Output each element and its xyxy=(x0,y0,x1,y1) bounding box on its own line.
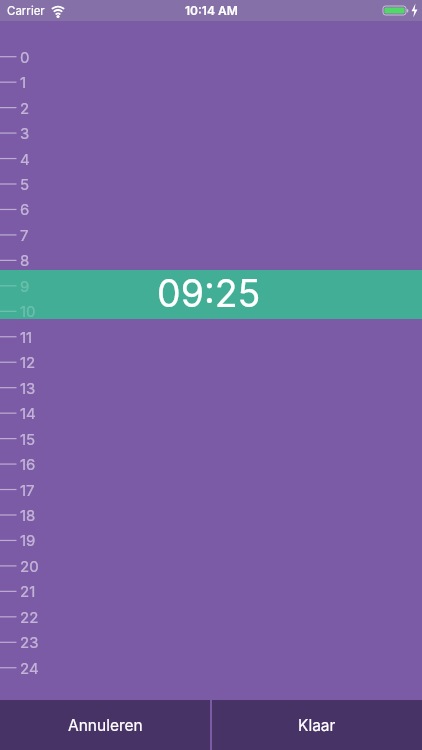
staticText: 2 xyxy=(20,99,30,117)
staticText: 6 xyxy=(20,200,30,218)
staticText: Carrier xyxy=(7,4,45,18)
staticText: 14 xyxy=(20,404,36,422)
staticText: 11 xyxy=(20,328,33,346)
staticText: 21 xyxy=(20,582,36,600)
staticText: 0 xyxy=(20,48,30,66)
staticText: 1 xyxy=(20,73,27,91)
staticText: 18 xyxy=(20,506,36,524)
staticText: 22 xyxy=(20,608,39,626)
staticText: 20 xyxy=(20,557,39,575)
staticText: 16 xyxy=(20,455,36,473)
staticText: 10 xyxy=(20,302,36,320)
staticText: 5 xyxy=(20,175,30,193)
staticText: Klaar xyxy=(298,716,336,735)
staticText: 15 xyxy=(20,430,36,448)
staticText: 24 xyxy=(20,659,39,677)
staticText: 7 xyxy=(20,226,29,244)
staticText: 12 xyxy=(20,353,36,371)
staticText: Annuleren xyxy=(68,716,143,735)
staticText: 09:25 xyxy=(157,271,261,316)
staticText: 10:14 AM xyxy=(185,3,238,18)
staticText: 4 xyxy=(20,150,30,168)
staticText: 9 xyxy=(20,277,30,295)
staticText: 13 xyxy=(20,379,36,397)
staticText: 3 xyxy=(20,124,30,142)
staticText: 17 xyxy=(20,481,35,499)
staticText: 23 xyxy=(20,633,39,651)
staticText: 19 xyxy=(20,531,36,549)
staticText: 8 xyxy=(20,251,30,269)
